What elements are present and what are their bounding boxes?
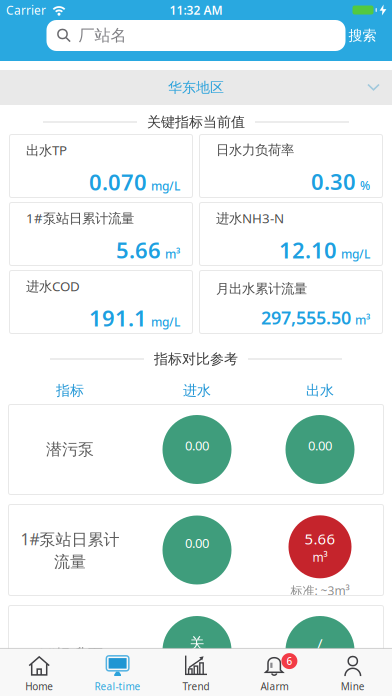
button[interactable]: Trend xyxy=(157,647,235,696)
staticText: 指标对比参考 xyxy=(154,350,238,368)
button[interactable]: 厂站名 xyxy=(46,20,345,51)
staticText: 297,555.50 xyxy=(261,305,351,330)
staticText: 关键指标当前值 xyxy=(147,113,245,131)
button[interactable]: 搜索 xyxy=(345,27,384,44)
staticText: 0.070 xyxy=(89,167,147,197)
staticText: 指标 xyxy=(56,382,84,399)
staticText: 191.1 xyxy=(89,303,147,333)
button[interactable]: Alarm xyxy=(235,647,314,696)
staticText: 出水TP xyxy=(26,141,67,159)
staticText: 1#提升泵 xyxy=(36,644,103,665)
staticText: 1#泵站日累计 xyxy=(20,528,119,550)
staticText: 华东地区 xyxy=(168,79,224,96)
staticText: Carrier xyxy=(6,2,46,18)
staticText: Real-time xyxy=(95,680,141,693)
button[interactable]: 月出水累计流量 xyxy=(199,270,383,334)
staticText: Mine xyxy=(341,680,365,693)
staticText: 0.00 xyxy=(185,534,209,552)
staticText: 0.30 xyxy=(311,166,356,196)
staticText: 潜污泵 xyxy=(46,439,94,460)
button[interactable]: 华东地区 xyxy=(0,70,392,105)
staticText: Home xyxy=(25,680,53,693)
button[interactable]: Home xyxy=(0,647,78,696)
staticText: 标准: ~3m³ xyxy=(290,582,349,599)
staticText: Alarm xyxy=(260,680,288,693)
button[interactable]: 日水力负荷率 xyxy=(199,134,383,198)
button[interactable]: 1#提升泵 xyxy=(8,605,384,696)
staticText: 厂站名 xyxy=(78,25,126,46)
staticText: 6 xyxy=(286,654,292,668)
staticText: 出水 xyxy=(306,382,334,399)
staticText: 进水NH3-N xyxy=(216,209,284,227)
button[interactable]: Mine xyxy=(314,647,392,696)
staticText: m³ xyxy=(355,312,370,328)
staticText: 11:32 AM xyxy=(169,2,222,18)
button[interactable]: 进水COD xyxy=(9,270,193,334)
button[interactable]: Real-time xyxy=(78,647,157,696)
staticText: 流量 xyxy=(54,552,86,572)
staticText: 12.10 xyxy=(279,235,337,265)
staticText: mg/L xyxy=(341,246,370,262)
staticText: 5.66 xyxy=(116,235,161,265)
staticText: 进水COD xyxy=(26,277,80,295)
button[interactable]: 出水TP xyxy=(9,134,193,198)
staticText: 月出水累计流量 xyxy=(216,280,307,297)
staticText: mg/L xyxy=(151,314,180,330)
staticText: mg/L xyxy=(151,178,180,194)
staticText: Trend xyxy=(182,680,209,693)
button[interactable]: 潜污泵 xyxy=(8,404,384,495)
staticText: 进水 xyxy=(183,382,211,399)
staticText: 0.00 xyxy=(308,437,332,454)
staticText: 5.66 xyxy=(304,528,335,549)
staticText: / xyxy=(317,633,323,654)
staticText: 日水力负荷率 xyxy=(216,142,294,158)
button[interactable]: 进水NH3-N xyxy=(199,202,383,266)
staticText: m³ xyxy=(165,246,180,262)
staticText: 关 xyxy=(189,634,204,653)
button[interactable]: 1#泵站日累计流量 xyxy=(9,202,193,266)
staticText: % xyxy=(360,177,370,193)
staticText: 搜索 xyxy=(348,27,376,44)
button[interactable]: 1#泵站日累计 xyxy=(8,504,384,596)
staticText: 1#泵站日累计流量 xyxy=(26,209,134,227)
staticText: 0.00 xyxy=(185,437,209,454)
staticText: m³ xyxy=(312,549,327,565)
